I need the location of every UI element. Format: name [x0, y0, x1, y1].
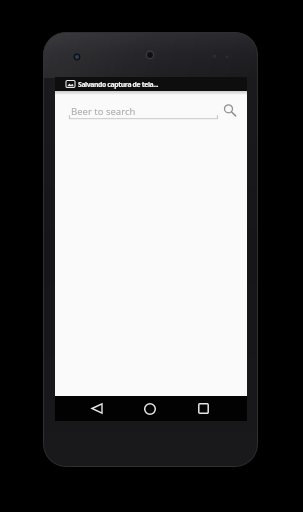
button[interactable] [81, 396, 113, 421]
button[interactable] [134, 396, 166, 421]
staticText: Beer to search [71, 105, 136, 118]
button[interactable]: Beer to search [67, 93, 235, 123]
button[interactable] [187, 396, 219, 421]
staticText: Salvando captura de tela... [78, 80, 159, 89]
